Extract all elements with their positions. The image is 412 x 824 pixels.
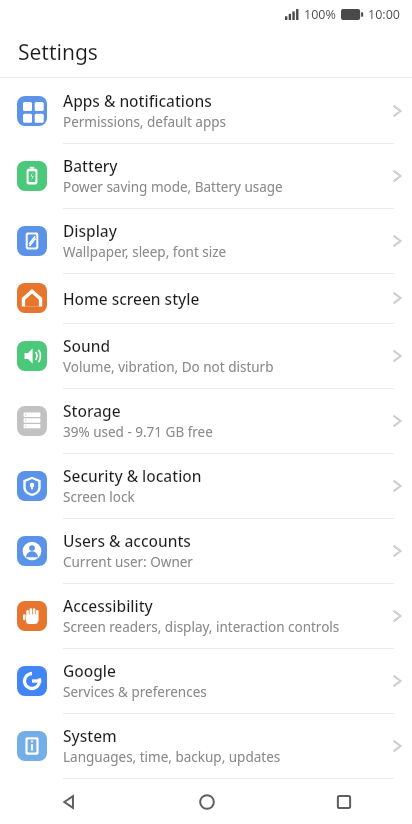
button[interactable]: Sound [0,323,412,388]
staticText: Settings [18,38,98,67]
staticText: System [63,725,117,746]
button[interactable]: System [0,713,412,778]
button[interactable]: Google [0,648,412,713]
staticText: Services & preferences [63,683,207,701]
staticText: Security & location [63,465,202,486]
button[interactable]: Display [0,208,412,273]
button[interactable]: Storage [0,388,412,453]
staticText: Volume, vibration, Do not disturb [63,358,274,376]
staticText: Current user: Owner [63,553,193,571]
staticText: Wallpaper, sleep, font size [63,243,227,261]
staticText: Battery [63,155,118,176]
button[interactable]: Home [138,779,275,824]
staticText: Screen lock [63,488,135,506]
staticText: Sound [63,335,111,356]
button[interactable]: Users & accounts [0,518,412,583]
staticText: Screen readers, display, interaction con… [63,618,340,636]
staticText: Storage [63,400,121,421]
button[interactable]: Accessibility [0,583,412,648]
button[interactable]: Apps & notifications [0,78,412,143]
staticText: Google [63,660,116,681]
button[interactable]: Security & location [0,453,412,518]
staticText: Home screen style [63,288,200,309]
staticText: Users & accounts [63,530,191,551]
staticText: Permissions, default apps [63,113,226,131]
staticText: 100% [304,6,336,23]
staticText: Accessibility [63,595,153,616]
button[interactable]: Back [0,779,138,824]
staticText: 10:00 [368,6,400,23]
staticText: 39% used - 9.71 GB free [63,423,213,441]
staticText: Power saving mode, Battery usage [63,178,283,196]
staticText: Languages, time, backup, updates [63,748,281,766]
button[interactable]: Home screen style [0,273,412,323]
staticText: Apps & notifications [63,90,212,111]
staticText: Display [63,220,117,241]
button[interactable]: Battery [0,143,412,208]
button[interactable]: Recent apps [275,779,412,824]
